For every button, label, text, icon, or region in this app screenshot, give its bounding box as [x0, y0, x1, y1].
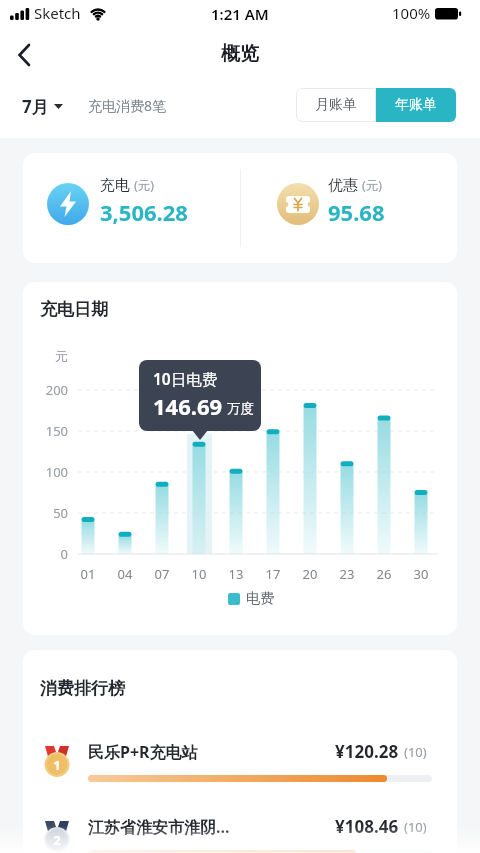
staticText: 7月	[22, 95, 49, 118]
button[interactable]	[8, 38, 42, 72]
staticText: ¥120.28	[335, 740, 399, 763]
staticText: 元	[43, 348, 68, 364]
button[interactable]: 月账单	[296, 88, 376, 122]
staticText: 充电消费8笔	[88, 96, 167, 115]
staticText: 20	[295, 565, 325, 583]
staticText: 146.69	[153, 391, 223, 421]
staticText: (10)	[404, 743, 427, 761]
staticText: (元)	[134, 177, 155, 194]
staticText: 民乐P+R充电站	[88, 741, 198, 763]
staticText: 江苏省淮安市淮阴...	[88, 816, 230, 838]
staticText: 100%	[392, 3, 431, 23]
staticText: 100	[23, 463, 68, 481]
staticText: 充电日期	[40, 299, 108, 320]
button[interactable]: 年账单	[376, 88, 456, 122]
staticText: 万度	[227, 400, 254, 417]
staticText: 10	[184, 565, 214, 583]
staticText: 50	[23, 504, 68, 522]
button[interactable]: 7月	[22, 89, 64, 123]
staticText: 95.68	[328, 197, 385, 227]
staticText: 26	[369, 565, 399, 583]
staticText: 0	[23, 545, 68, 563]
button[interactable]: 2	[23, 813, 457, 853]
staticText: 30	[406, 565, 436, 583]
staticText: 04	[110, 565, 140, 583]
staticText: 1	[39, 756, 75, 774]
staticText: 优惠	[328, 176, 358, 195]
staticText: 13	[221, 565, 251, 583]
staticText: 200	[23, 381, 68, 399]
staticText: 3,506.28	[100, 197, 188, 227]
staticText: 1:21 AM	[211, 4, 269, 24]
staticText: 电费	[246, 590, 274, 608]
staticText: 07	[147, 565, 177, 583]
staticText: 概览	[221, 42, 259, 66]
staticText: 23	[332, 565, 362, 583]
staticText: 充电	[100, 176, 130, 195]
staticText: 150	[23, 422, 68, 440]
staticText: 年账单	[395, 96, 437, 114]
staticText: (元)	[362, 177, 383, 194]
staticText: (10)	[404, 818, 427, 836]
staticText: 消费排行榜	[40, 678, 125, 699]
staticText: ¥108.46	[335, 815, 399, 838]
staticText: 月账单	[315, 96, 357, 114]
staticText: 10日电费	[153, 368, 218, 389]
button[interactable]: 1	[23, 738, 457, 813]
staticText: 2	[39, 831, 75, 849]
staticText: Sketch	[34, 3, 81, 23]
staticText: 01	[73, 565, 103, 583]
staticText: 17	[258, 565, 288, 583]
